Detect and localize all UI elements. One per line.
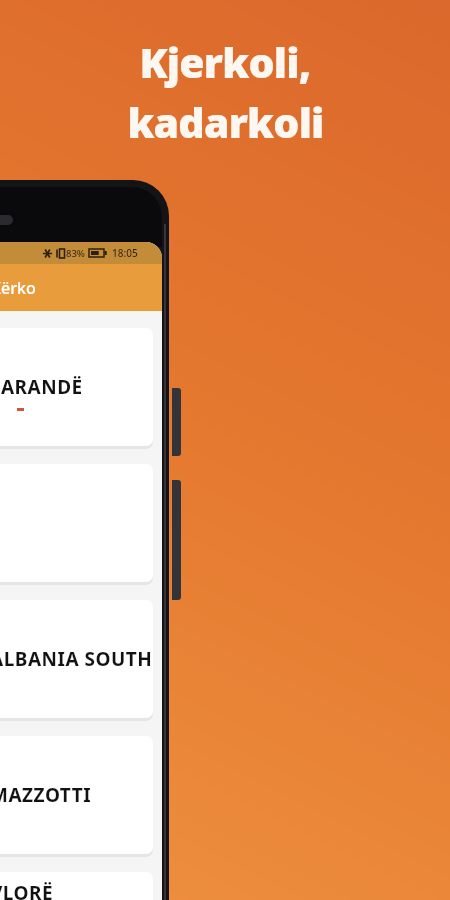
button[interactable]: ALBANIA SOUTH <box>0 600 153 718</box>
button[interactable]: Volume buttons <box>172 480 181 600</box>
button[interactable]: SARANDË <box>0 328 153 446</box>
button[interactable]: VLORË <box>0 872 153 900</box>
staticText: Kjerkoli, <box>139 34 311 90</box>
button[interactable]: Kërko <box>0 264 162 311</box>
button[interactable]: Power button <box>172 388 181 456</box>
button[interactable]: MAZZOTTI <box>0 736 153 854</box>
staticText: 18:05 <box>112 246 138 260</box>
staticText: SARANDË <box>0 374 83 400</box>
staticText: 83% <box>66 247 85 260</box>
staticText: VLORË <box>0 880 54 900</box>
staticText: MAZZOTTI <box>0 782 92 808</box>
staticText: kadarkoli <box>127 94 324 150</box>
staticText: Kërko <box>0 277 36 299</box>
staticText: ALBANIA SOUTH <box>0 646 153 672</box>
